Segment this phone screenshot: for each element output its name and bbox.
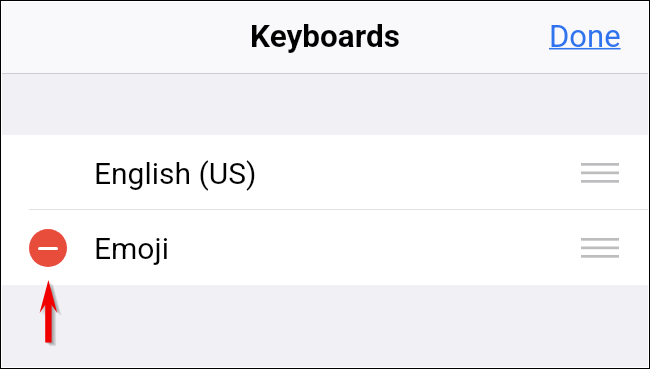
staticText: English (US)	[94, 156, 257, 191]
button[interactable]: Reorder	[581, 238, 619, 259]
staticText: Done	[549, 18, 621, 54]
button[interactable]: Reorder	[581, 163, 619, 184]
button[interactable]: English (US)	[2, 135, 648, 209]
button[interactable]: Remove keyboard	[29, 229, 67, 267]
button[interactable]: Done	[549, 18, 621, 54]
staticText: Emoji	[94, 231, 169, 266]
staticText: Keyboards	[250, 18, 400, 55]
button[interactable]: Remove keyboard	[2, 210, 648, 285]
